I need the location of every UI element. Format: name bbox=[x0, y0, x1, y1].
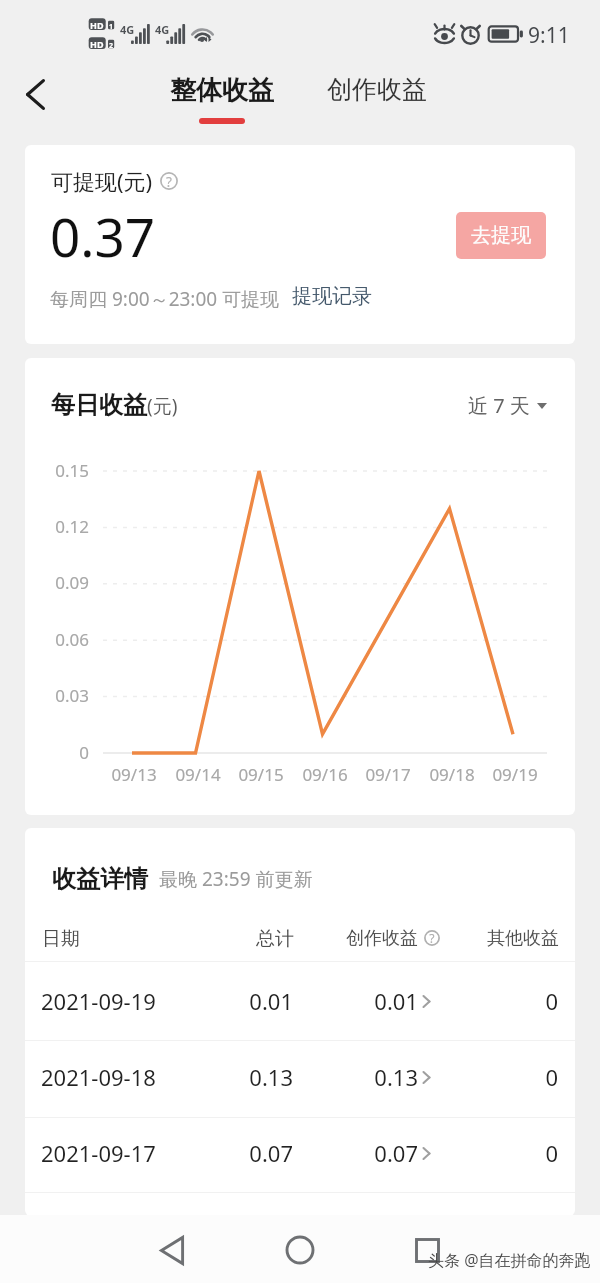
button[interactable]: 创作收益 bbox=[317, 57, 437, 134]
staticText: HD bbox=[90, 38, 104, 50]
button[interactable]: Back bbox=[146, 1224, 198, 1276]
staticText: 提现记录 bbox=[292, 284, 372, 309]
staticText: 2021-09-17 bbox=[41, 1138, 181, 1168]
staticText: 0.15 bbox=[25, 459, 89, 482]
staticText: 总计 bbox=[174, 927, 294, 951]
staticText: 最晚 23:59 前更新 bbox=[159, 866, 313, 892]
staticText: 09/16 bbox=[285, 763, 365, 786]
staticText: (元) bbox=[147, 393, 178, 419]
staticText: 0.13 bbox=[298, 1062, 418, 1092]
staticText: 创作收益 bbox=[298, 927, 418, 950]
staticText: 头条 @自在拼命的奔跑 bbox=[428, 1249, 591, 1271]
staticText: HD bbox=[90, 19, 104, 31]
staticText: 09/14 bbox=[158, 763, 238, 786]
button[interactable]: 去提现 bbox=[456, 212, 546, 259]
staticText: 整体收益 bbox=[170, 74, 274, 107]
staticText: 2 bbox=[109, 41, 114, 51]
staticText: 每日收益 bbox=[51, 390, 147, 420]
staticText: 可提现(元) bbox=[51, 166, 153, 196]
staticText: 0.07 bbox=[173, 1138, 293, 1168]
button[interactable]: 提现记录 bbox=[292, 284, 372, 309]
staticText: 2021-09-18 bbox=[41, 1062, 181, 1092]
button[interactable]: Recent apps bbox=[401, 1224, 453, 1276]
button[interactable]: 2021-09-19 bbox=[25, 964, 575, 1040]
staticText: ? bbox=[166, 172, 172, 190]
button[interactable]: What is withdrawable balance bbox=[160, 172, 178, 190]
staticText: 4G bbox=[155, 22, 170, 37]
staticText: 09/19 bbox=[475, 763, 555, 786]
staticText: 4G bbox=[120, 22, 135, 37]
staticText: 去提现 bbox=[471, 223, 531, 248]
staticText: 收益详情 bbox=[52, 864, 148, 894]
staticText: 09/13 bbox=[94, 763, 174, 786]
button[interactable]: Home bbox=[274, 1224, 326, 1276]
staticText: 0.03 bbox=[25, 684, 89, 707]
staticText: 其他收益 bbox=[439, 927, 559, 950]
staticText: 09/18 bbox=[412, 763, 492, 786]
staticText: 0 bbox=[438, 1062, 558, 1092]
staticText: 2021-09-19 bbox=[41, 986, 181, 1016]
staticText: 09/15 bbox=[221, 763, 301, 786]
button[interactable]: Back bbox=[9, 68, 61, 120]
button[interactable]: 2021-09-18 bbox=[25, 1040, 575, 1116]
staticText: 0 bbox=[438, 1138, 558, 1168]
staticText: 每周四 9:00～23:00 可提现 bbox=[50, 286, 280, 312]
staticText: 0.07 bbox=[298, 1138, 418, 1168]
staticText: 09/17 bbox=[348, 763, 428, 786]
staticText: 0.06 bbox=[25, 628, 89, 651]
button[interactable]: What is creation income bbox=[424, 930, 440, 946]
staticText: 0.13 bbox=[173, 1062, 293, 1092]
staticText: 0.09 bbox=[25, 571, 89, 594]
button[interactable]: 近 7 天 bbox=[468, 392, 547, 419]
button[interactable]: 2021-09-17 bbox=[25, 1116, 575, 1192]
staticText: 1 bbox=[109, 22, 114, 32]
staticText: 9:11 bbox=[528, 21, 570, 50]
button[interactable]: 整体收益 bbox=[162, 57, 282, 134]
staticText: 0.12 bbox=[25, 515, 89, 538]
staticText: 创作收益 bbox=[327, 74, 427, 105]
staticText: ? bbox=[429, 930, 435, 946]
staticText: 0.01 bbox=[173, 986, 293, 1016]
staticText: 日期 bbox=[42, 927, 162, 951]
staticText: 0.37 bbox=[50, 200, 156, 272]
staticText: 0 bbox=[438, 986, 558, 1016]
staticText: 0 bbox=[25, 741, 89, 764]
staticText: 0.01 bbox=[298, 986, 418, 1016]
staticText: 近 7 天 bbox=[468, 392, 530, 419]
